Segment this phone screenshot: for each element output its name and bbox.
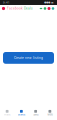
button[interactable]: Notifications	[47, 5, 51, 12]
staticText: Home	[4, 113, 10, 116]
staticText: Facebook	[7, 7, 23, 10]
staticText: ●●● ▬	[44, 1, 54, 4]
button[interactable]: Filter	[39, 5, 43, 12]
button[interactable]: Messages	[51, 5, 55, 12]
button[interactable]: Browse	[14, 106, 28, 120]
staticText: Deals	[23, 7, 33, 10]
button[interactable]: Home	[0, 106, 14, 120]
staticText: 9:41	[3, 1, 9, 4]
button[interactable]: Create new listing	[3, 52, 54, 64]
staticText: Menu	[47, 113, 52, 116]
button[interactable]: Search	[43, 5, 47, 12]
button[interactable]: Saved	[28, 106, 43, 120]
staticText: Browse	[18, 113, 25, 116]
button[interactable]: Profile	[0, 5, 7, 12]
staticText: Create new listing	[14, 56, 43, 60]
staticText: Saved	[33, 113, 38, 116]
button[interactable]: Menu	[43, 106, 57, 120]
